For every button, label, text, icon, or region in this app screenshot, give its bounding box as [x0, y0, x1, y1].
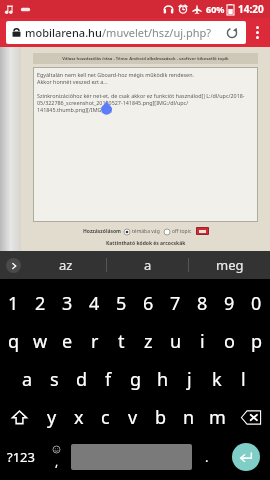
staticText: v — [128, 405, 138, 430]
staticText: z — [144, 329, 153, 354]
button[interactable]: 8 — [189, 284, 216, 322]
button[interactable]: b — [147, 398, 175, 436]
button[interactable]: i — [189, 322, 216, 360]
staticText: f — [105, 367, 112, 392]
button[interactable]: w — [27, 322, 54, 360]
staticText: n — [183, 405, 195, 430]
staticText: témába vág — [132, 228, 160, 235]
button[interactable]: k — [203, 360, 230, 398]
button[interactable]: 9 — [216, 284, 243, 322]
button[interactable]: . — [192, 436, 221, 478]
staticText: u — [170, 329, 182, 354]
button[interactable]: t — [108, 322, 135, 360]
button[interactable]: 4 — [81, 284, 108, 322]
button[interactable]: Backspace — [231, 398, 270, 436]
staticText: w — [33, 329, 48, 354]
button[interactable]: ?123 — [0, 436, 42, 478]
staticText: h — [157, 367, 169, 392]
staticText: 1 — [8, 291, 19, 316]
button[interactable]: c — [92, 398, 119, 436]
button[interactable]: y — [38, 398, 65, 436]
button[interactable]: a — [107, 251, 188, 279]
button[interactable]: Válasz hozzászólás írása - Téma: Android… — [33, 53, 258, 64]
staticText: 0 — [251, 291, 262, 316]
button[interactable]: g — [122, 360, 149, 398]
staticText: g — [130, 367, 142, 392]
button[interactable]: j — [176, 360, 203, 398]
staticText: Kattintható kódok és arcocskák — [106, 240, 186, 247]
staticText: mobilarena.hu — [25, 25, 102, 40]
button[interactable]: 2 — [27, 284, 54, 322]
staticText: e — [62, 329, 73, 354]
staticText: p — [251, 329, 263, 354]
staticText: , — [55, 453, 59, 469]
staticText: /muvelet/hsz/uj.php?thrid=2112 — [102, 25, 221, 40]
button[interactable]: Egyáltalán nem kell net Gboard-hoz mégis… — [33, 67, 258, 222]
button[interactable]: u — [162, 322, 189, 360]
staticText: 3 — [62, 291, 73, 316]
button[interactable]: 0 — [243, 284, 270, 322]
staticText: Hozzászólásom — [83, 228, 121, 235]
staticText: d — [76, 367, 88, 392]
staticText: . — [205, 448, 209, 466]
button[interactable]: az — [26, 251, 106, 279]
staticText: q — [8, 329, 20, 354]
button[interactable]: Küldés — [196, 227, 209, 235]
button[interactable]: témába vág — [124, 228, 160, 235]
button[interactable]: a — [13, 360, 41, 398]
button[interactable]: l — [230, 360, 257, 398]
button[interactable]: e — [54, 322, 81, 360]
staticText: o — [224, 329, 235, 354]
button[interactable]: q — [0, 322, 27, 360]
button[interactable]: Expand suggestions — [0, 251, 26, 279]
button[interactable]: meg — [189, 251, 270, 279]
button[interactable]: Shift — [0, 398, 38, 436]
staticText: b — [155, 405, 167, 430]
staticText: y — [47, 405, 57, 430]
button[interactable]: d — [68, 360, 95, 398]
button[interactable]: x — [65, 398, 92, 436]
button[interactable]: 3 — [54, 284, 81, 322]
button[interactable]: z — [135, 322, 162, 360]
button[interactable]: 1 — [0, 284, 27, 322]
button[interactable]: Reload — [224, 25, 240, 41]
staticText: s — [50, 367, 59, 392]
staticText: 141845.thumb.png][/IMG][/L] — [37, 106, 112, 113]
button[interactable]: Emoji and comma — [42, 436, 71, 478]
button[interactable]: p — [243, 322, 270, 360]
button[interactable]: o — [216, 322, 243, 360]
staticText: k — [212, 367, 222, 392]
button[interactable]: More options — [246, 21, 268, 44]
staticText: t — [118, 329, 125, 354]
staticText: 6 — [143, 291, 154, 316]
staticText: i — [200, 329, 205, 354]
button[interactable]: 7 — [162, 284, 189, 322]
staticText: 2 — [35, 291, 46, 316]
staticText: r — [91, 329, 99, 354]
button[interactable]: mobilarena.hu — [6, 21, 246, 44]
staticText: 4 — [89, 291, 100, 316]
button[interactable]: Space — [71, 444, 192, 470]
button[interactable]: 5 — [108, 284, 135, 322]
button[interactable]: off topic — [164, 228, 192, 235]
staticText: Válasz hozzászólás írása - Téma: Android… — [62, 56, 229, 62]
button[interactable]: n — [175, 398, 203, 436]
staticText: off topic — [172, 228, 192, 235]
button[interactable]: 6 — [135, 284, 162, 322]
staticText: c — [101, 405, 110, 430]
staticText: Akkor honnét veszed ezt a... — [37, 78, 108, 85]
staticText: j — [187, 367, 192, 392]
button[interactable]: s — [41, 360, 68, 398]
button[interactable]: f — [95, 360, 122, 398]
button[interactable]: v — [119, 398, 147, 436]
staticText: 9 — [224, 291, 235, 316]
button[interactable]: m — [203, 398, 231, 436]
staticText: 60% — [206, 3, 225, 15]
button[interactable]: Enter — [232, 443, 260, 471]
button[interactable]: r — [81, 322, 108, 360]
staticText: 8 — [197, 291, 208, 316]
staticText: l — [241, 367, 246, 392]
button[interactable]: h — [149, 360, 176, 398]
staticText: x — [74, 405, 84, 430]
staticText: Szinkronizációhoz kér net-et, de csak ak… — [37, 92, 245, 99]
